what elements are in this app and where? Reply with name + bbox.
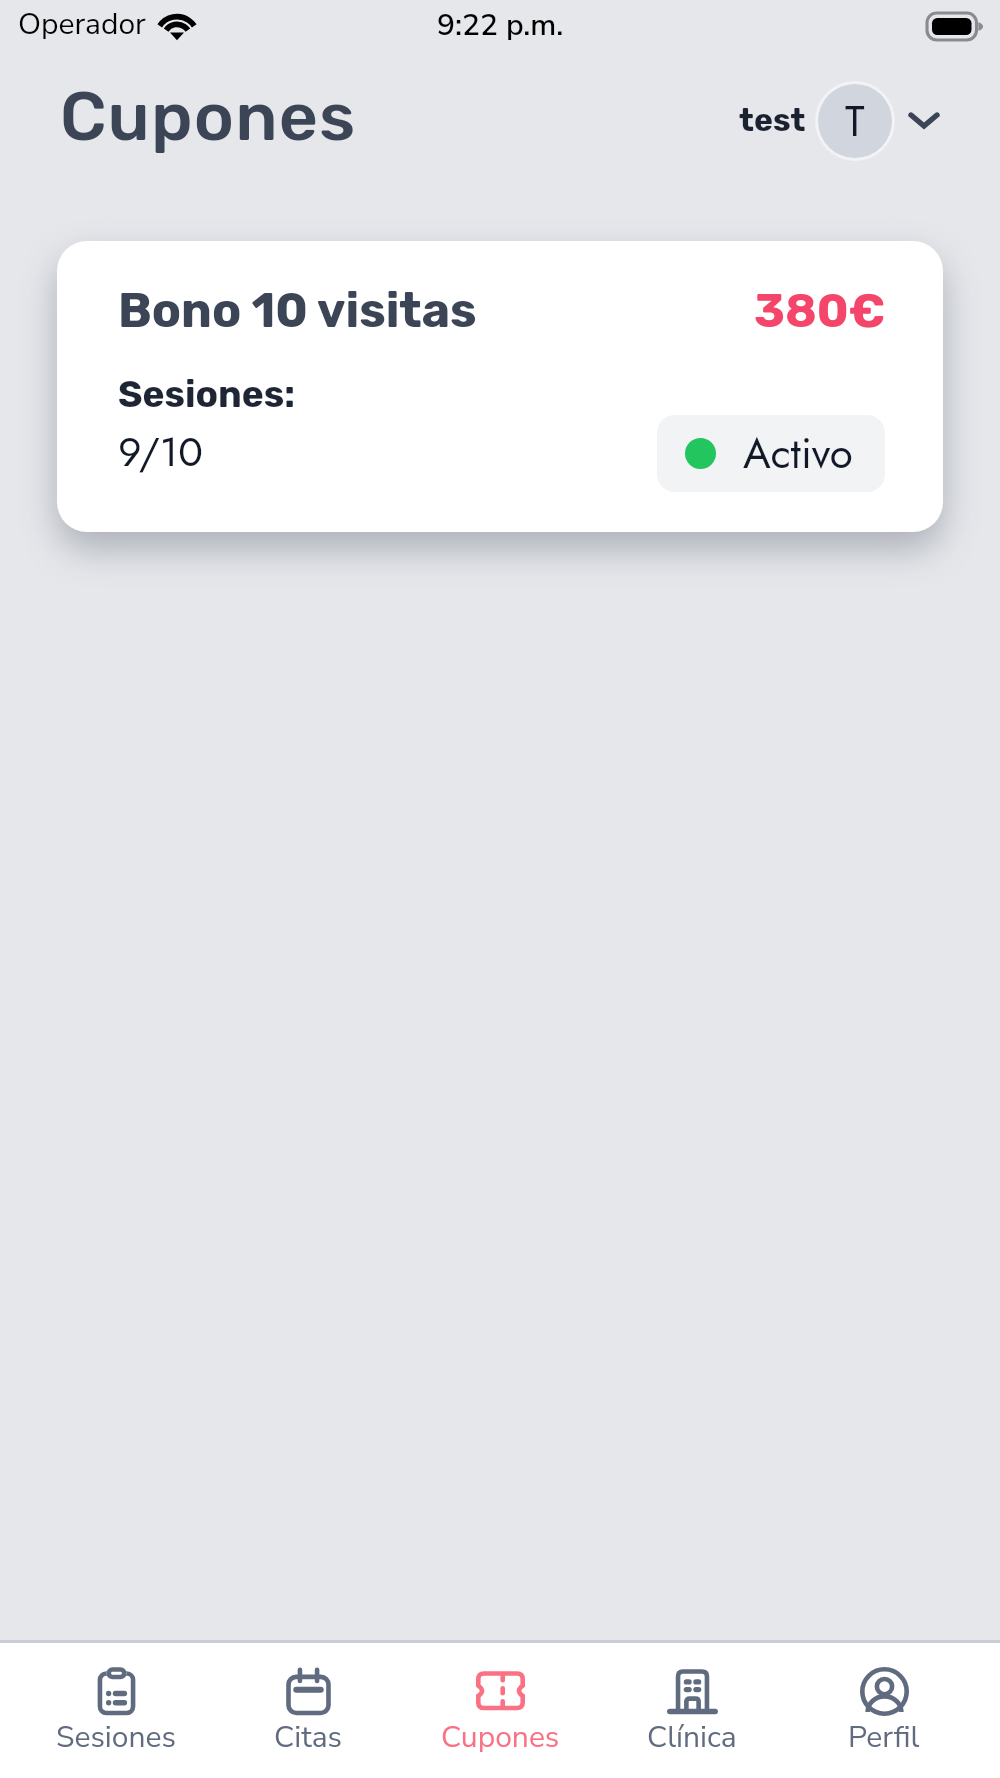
staticText: Cupones xyxy=(60,76,357,157)
staticText: Activo xyxy=(743,423,853,484)
staticText: Operador xyxy=(18,4,146,45)
button[interactable]: Citas xyxy=(212,1643,404,1758)
button[interactable]: Clínica xyxy=(596,1643,788,1758)
button[interactable]: Bono 10 visitas xyxy=(57,241,943,532)
staticText: Citas xyxy=(274,1717,342,1758)
other: Cambiar cuenta xyxy=(902,98,946,142)
staticText: Sesiones xyxy=(56,1717,176,1758)
staticText: Sesiones: xyxy=(118,372,296,416)
button[interactable]: Activo xyxy=(657,415,885,492)
staticText: Clínica xyxy=(647,1717,737,1758)
staticText: test xyxy=(739,101,806,139)
button[interactable]: Cupones xyxy=(404,1643,596,1758)
button[interactable]: Cuenta test, cambiar cuenta xyxy=(722,76,968,166)
staticText: 9/10 xyxy=(118,422,203,481)
button[interactable]: Perfil xyxy=(788,1643,980,1758)
staticText: T xyxy=(845,91,865,152)
staticText: Perfil xyxy=(848,1717,920,1758)
staticText: 9:22 p.m. xyxy=(437,5,564,46)
staticText: Cupones xyxy=(441,1717,560,1758)
staticText: 380€ xyxy=(754,283,886,339)
staticText: Bono 10 visitas xyxy=(118,282,477,339)
button[interactable]: Sesiones xyxy=(20,1643,212,1758)
